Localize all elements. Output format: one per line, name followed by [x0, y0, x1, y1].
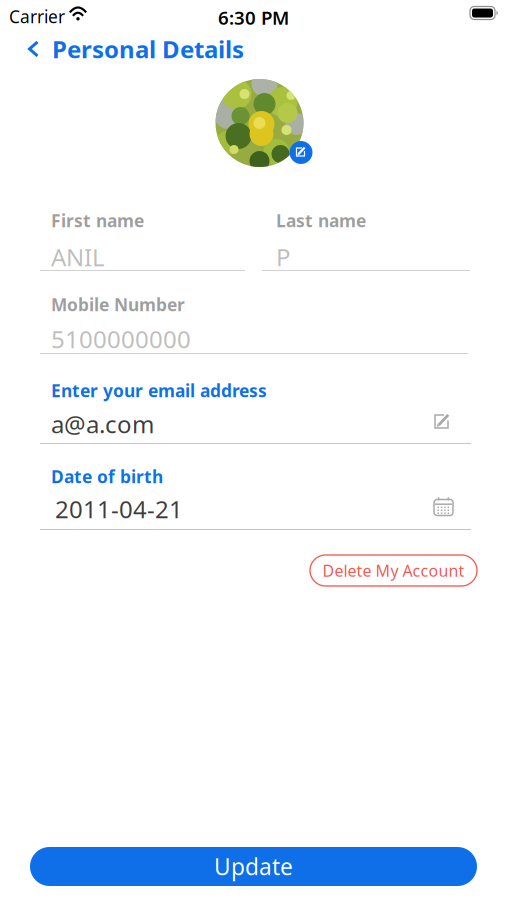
- button[interactable]: First name: [40, 205, 245, 273]
- button[interactable]: Update: [30, 847, 477, 886]
- staticText: Last name: [276, 209, 366, 232]
- button[interactable]: Change profile photo: [211, 79, 308, 167]
- staticText: Date of birth: [51, 465, 163, 488]
- staticText: ANIL: [51, 241, 105, 273]
- staticText: Mobile Number: [51, 293, 185, 316]
- staticText: 6:30 PM: [218, 5, 289, 30]
- button[interactable]: Delete My Account: [310, 555, 477, 586]
- button[interactable]: Back: [28, 33, 244, 65]
- staticText: Carrier: [9, 5, 65, 28]
- staticText: 5100000000: [51, 323, 191, 355]
- staticText: Personal Details: [52, 33, 244, 65]
- button[interactable]: Date of birth: [40, 461, 471, 533]
- staticText: Update: [214, 851, 293, 881]
- staticText: First name: [51, 209, 144, 232]
- button[interactable]: Mobile Number: [40, 289, 468, 356]
- staticText: Enter your email address: [51, 379, 267, 402]
- staticText: Delete My Account: [322, 560, 464, 581]
- staticText: a@a.com: [51, 408, 154, 440]
- button[interactable]: Enter your email address: [40, 375, 471, 445]
- staticText: P: [276, 241, 291, 273]
- staticText: 2011-04-21: [55, 493, 183, 525]
- button[interactable]: Last name: [262, 205, 470, 273]
